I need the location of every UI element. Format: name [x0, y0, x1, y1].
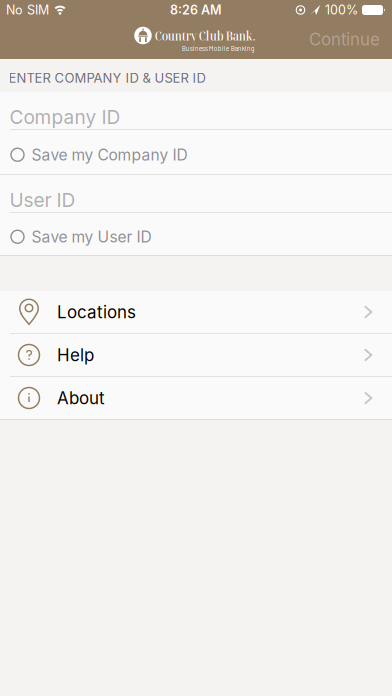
button[interactable]: Locations: [0, 291, 392, 333]
staticText: ENTER COMPANY ID & USER ID: [8, 70, 205, 86]
staticText: Continue: [309, 29, 380, 50]
staticText: Save my User ID: [31, 227, 151, 246]
staticText: About: [57, 388, 105, 408]
staticText: User ID: [9, 188, 75, 212]
staticText: Business Mobile Banking: [182, 44, 255, 52]
staticText: Help: [57, 345, 94, 365]
button[interactable]: About: [0, 377, 392, 419]
staticText: Locations: [57, 302, 136, 322]
staticText: Save my Company ID: [31, 145, 187, 164]
staticText: Company ID: [9, 105, 120, 129]
button[interactable]: Save my Company ID: [0, 130, 392, 174]
staticText: 8:26 AM: [170, 2, 222, 18]
staticText: Country Club Bank.: [155, 27, 256, 44]
staticText: 100%: [325, 2, 358, 18]
button[interactable]: User ID: [0, 175, 392, 212]
button[interactable]: Company ID: [0, 92, 392, 129]
button[interactable]: Continue: [309, 29, 392, 50]
button[interactable]: Help: [0, 334, 392, 376]
button[interactable]: Save my User ID: [0, 213, 392, 255]
staticText: No SIM: [6, 2, 49, 18]
